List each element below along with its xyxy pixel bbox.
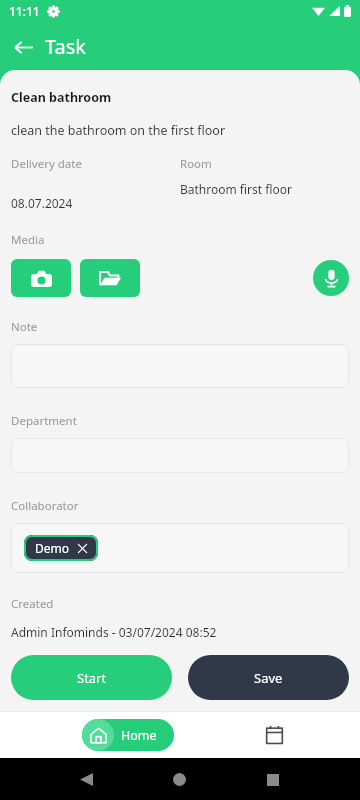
staticText: Start: [77, 669, 107, 687]
staticText: 11:11: [9, 3, 40, 19]
button[interactable]: Demo: [24, 535, 98, 561]
button[interactable]: Record audio: [313, 260, 349, 296]
button[interactable]: Home: [173, 773, 186, 786]
button[interactable]: Open files: [80, 259, 140, 297]
button[interactable]: [11, 344, 349, 388]
button[interactable]: Home: [82, 719, 174, 751]
other: Remove Demo: [78, 544, 87, 553]
button[interactable]: Start: [11, 655, 172, 700]
staticText: Room: [180, 156, 212, 172]
button[interactable]: Take photo: [11, 259, 71, 297]
button[interactable]: Save: [188, 655, 349, 700]
staticText: Media: [11, 232, 45, 248]
staticText: clean the bathroom on the first floor: [11, 122, 226, 139]
staticText: 08.07.2024: [11, 195, 73, 211]
staticText: Task: [45, 33, 86, 60]
staticText: Note: [11, 319, 38, 335]
staticText: Clean bathroom: [11, 89, 112, 106]
staticText: Bathroom first floor: [180, 181, 292, 197]
button[interactable]: Back: [11, 35, 35, 59]
staticText: Collaborator: [11, 498, 79, 514]
staticText: Created: [11, 596, 54, 612]
button[interactable]: [11, 438, 349, 473]
staticText: Department: [11, 413, 77, 429]
staticText: Home: [121, 727, 157, 744]
button[interactable]: Demo: [11, 523, 349, 573]
button[interactable]: Calendar: [258, 719, 290, 751]
staticText: Save: [254, 669, 283, 687]
staticText: Admin Infominds - 03/07/2024 08:52: [11, 624, 217, 640]
staticText: Delivery date: [11, 156, 82, 172]
button[interactable]: Back: [80, 773, 93, 786]
staticText: Demo: [35, 540, 70, 556]
